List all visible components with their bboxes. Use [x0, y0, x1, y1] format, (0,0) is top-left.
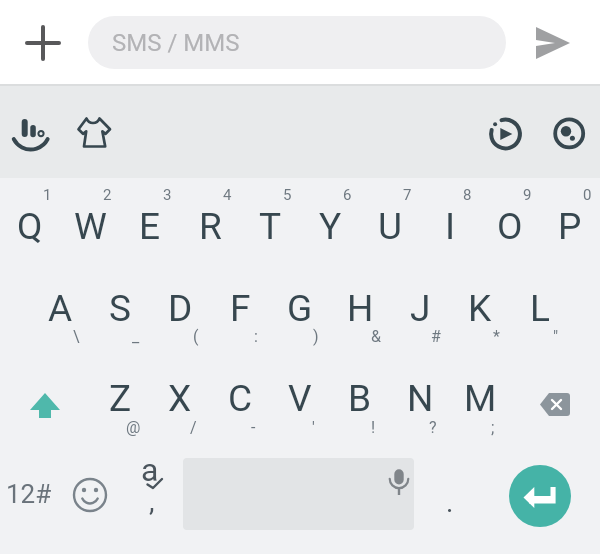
staticText: N: [407, 377, 434, 420]
staticText: E: [139, 205, 161, 248]
staticText: (: [193, 327, 199, 346]
button[interactable]: a: [122, 448, 178, 524]
staticText: !: [371, 418, 376, 437]
button[interactable]: [545, 109, 593, 157]
button[interactable]: R: [180, 196, 240, 256]
staticText: #: [431, 327, 441, 346]
button[interactable]: T: [240, 196, 300, 256]
staticText: 4: [223, 186, 232, 204]
button[interactable]: G: [270, 278, 330, 338]
staticText: P: [558, 205, 582, 248]
staticText: B: [348, 377, 372, 420]
staticText: /: [190, 418, 197, 437]
button[interactable]: H: [330, 278, 390, 338]
staticText: ,: [149, 485, 155, 518]
button[interactable]: D: [150, 278, 210, 338]
staticText: 7: [403, 186, 412, 204]
button[interactable]: Z: [90, 368, 150, 428]
button[interactable]: M: [450, 368, 510, 428]
staticText: a: [141, 451, 159, 485]
button[interactable]: J: [390, 278, 450, 338]
button[interactable]: X: [150, 368, 210, 428]
staticText: ": [553, 327, 559, 346]
staticText: &: [371, 327, 381, 346]
staticText: _: [132, 327, 140, 346]
button[interactable]: E: [120, 196, 180, 256]
button[interactable]: [528, 19, 578, 69]
staticText: T: [259, 205, 282, 248]
staticText: G: [287, 287, 313, 330]
staticText: :: [254, 327, 258, 346]
staticText: @: [126, 418, 141, 437]
staticText: F: [230, 287, 251, 330]
button[interactable]: N: [390, 368, 450, 428]
button[interactable]: K: [450, 278, 510, 338]
staticText: 6: [343, 186, 352, 204]
staticText: R: [199, 205, 222, 248]
button[interactable]: [183, 458, 414, 530]
button[interactable]: O: [480, 196, 540, 256]
staticText: Y: [319, 205, 342, 248]
button[interactable]: [509, 465, 571, 527]
staticText: 12#: [6, 479, 52, 509]
staticText: W: [74, 205, 107, 248]
staticText: O: [497, 205, 523, 248]
button[interactable]: S: [90, 278, 150, 338]
button[interactable]: C: [210, 368, 270, 428]
button[interactable]: L: [510, 278, 570, 338]
staticText: S: [109, 287, 131, 330]
staticText: H: [347, 287, 374, 330]
staticText: X: [168, 377, 192, 420]
staticText: U: [378, 205, 402, 248]
staticText: *: [493, 327, 500, 346]
staticText: \: [73, 327, 80, 346]
staticText: 8: [463, 186, 472, 204]
staticText: 0: [583, 186, 592, 204]
button[interactable]: F: [210, 278, 270, 338]
staticText: 2: [103, 186, 112, 204]
staticText: I: [445, 205, 456, 248]
button[interactable]: Q: [0, 196, 60, 256]
staticText: Q: [17, 205, 43, 248]
staticText: ): [313, 327, 319, 346]
staticText: ?: [429, 418, 437, 437]
button[interactable]: [525, 374, 585, 434]
button[interactable]: U: [360, 196, 420, 256]
staticText: 3: [163, 186, 172, 204]
button[interactable]: .: [430, 474, 470, 530]
staticText: K: [468, 287, 492, 330]
staticText: 1: [43, 186, 52, 204]
button[interactable]: W: [60, 196, 120, 256]
button[interactable]: B: [330, 368, 390, 428]
button[interactable]: SMS / MMS: [88, 16, 506, 69]
button[interactable]: [19, 19, 67, 67]
staticText: SMS / MMS: [112, 29, 240, 57]
button[interactable]: [70, 109, 118, 157]
button[interactable]: 12#: [0, 464, 58, 524]
button[interactable]: [66, 471, 114, 519]
staticText: ;: [491, 418, 495, 437]
button[interactable]: Y: [300, 196, 360, 256]
button[interactable]: V: [270, 368, 330, 428]
staticText: L: [530, 287, 550, 330]
staticText: A: [48, 287, 73, 330]
staticText: .: [446, 486, 454, 519]
staticText: -: [251, 418, 256, 437]
staticText: 5: [283, 186, 292, 204]
staticText: M: [464, 377, 497, 420]
button[interactable]: [10, 110, 58, 158]
button[interactable]: [15, 375, 75, 435]
staticText: J: [410, 287, 431, 330]
button[interactable]: [481, 110, 529, 158]
staticText: C: [228, 377, 253, 420]
staticText: Z: [109, 377, 132, 420]
staticText: 9: [523, 186, 532, 204]
button[interactable]: A: [30, 278, 90, 338]
staticText: D: [168, 287, 193, 330]
button[interactable]: I: [420, 196, 480, 256]
staticText: ': [312, 418, 315, 437]
staticText: V: [288, 377, 312, 420]
button[interactable]: P: [540, 196, 600, 256]
